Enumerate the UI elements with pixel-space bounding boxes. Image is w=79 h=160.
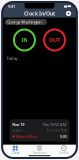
- staticText: OUT: [49, 36, 60, 44]
- button[interactable]: Timesheet: [27, 146, 52, 155]
- staticText: Profile: [59, 151, 69, 155]
- staticText: Running Total: [47, 129, 67, 132]
- button[interactable]: OUT: [43, 28, 67, 52]
- staticText: Clock: [12, 151, 19, 155]
- staticText: ⌄: [42, 20, 44, 23]
- staticText: Today: [7, 55, 18, 61]
- staticText: George Washington: [7, 19, 41, 25]
- staticText: IN: [21, 36, 27, 44]
- button[interactable]: George Washington: [5, 19, 47, 25]
- button[interactable]: IN: [12, 28, 36, 52]
- button[interactable]: Clock: [3, 146, 27, 155]
- staticText: Clock In/Out: [24, 10, 55, 17]
- staticText: ▮▮▮: [64, 5, 67, 8]
- staticText: 0:00: [60, 134, 67, 139]
- staticText: Timesheet: [32, 151, 46, 155]
- staticText: Location: [12, 129, 23, 132]
- staticText: Main Office: [16, 134, 37, 139]
- button[interactable]: Profile: [52, 146, 76, 155]
- staticText: Thu 10:52 AM: [43, 122, 67, 127]
- staticText: Nov 19: [12, 122, 24, 127]
- staticText: 9:41: [8, 4, 15, 9]
- button[interactable]: Settings: [65, 10, 72, 17]
